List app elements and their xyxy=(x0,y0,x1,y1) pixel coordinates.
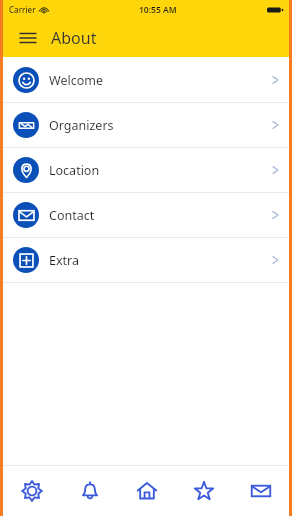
button[interactable]: Notifications xyxy=(61,466,118,516)
staticText: About xyxy=(51,27,97,49)
button[interactable]: Contact xyxy=(3,193,289,237)
button[interactable]: Open navigation menu xyxy=(15,25,41,51)
staticText: Carrier xyxy=(9,4,36,15)
staticText: Extra xyxy=(49,252,80,269)
staticText: Contact xyxy=(49,207,95,224)
staticText: 10:55 AM xyxy=(139,4,177,16)
button[interactable]: Location xyxy=(3,148,289,192)
button[interactable]: Settings xyxy=(3,466,61,516)
button[interactable]: Messages xyxy=(232,466,289,516)
staticText: Welcome xyxy=(49,72,103,89)
staticText: Location xyxy=(49,162,100,179)
button[interactable]: Welcome xyxy=(3,58,289,102)
button[interactable]: Home xyxy=(118,466,175,516)
staticText: Organizers xyxy=(49,117,114,134)
button[interactable]: Extra xyxy=(3,238,289,282)
button[interactable]: Favorites xyxy=(175,466,232,516)
button[interactable]: Organizers xyxy=(3,103,289,147)
